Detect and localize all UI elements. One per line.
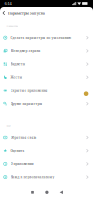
staticText: Скрытые приложения bbox=[11, 88, 48, 93]
button[interactable]: Сделать параметры по умолчанию bbox=[0, 31, 93, 44]
staticText: Виджеты bbox=[11, 62, 26, 66]
staticText: Менеджер экрана bbox=[11, 49, 41, 53]
staticText: Параметры запуска bbox=[8, 10, 45, 16]
button[interactable]: О приложении bbox=[0, 157, 93, 170]
staticText: О приложении bbox=[11, 162, 34, 166]
button[interactable]: Обратная связь bbox=[0, 131, 93, 144]
staticText: Жесты bbox=[11, 75, 23, 79]
button[interactable]: Недавние приложения bbox=[25, 186, 40, 198]
staticText: Сделать параметры по умолчанию bbox=[11, 36, 72, 40]
staticText: Обратная связь bbox=[11, 135, 37, 140]
staticText: Ещё bbox=[6, 124, 10, 127]
button[interactable]: Назад к первоначальному bbox=[0, 170, 93, 184]
button[interactable]: Назад bbox=[54, 186, 68, 198]
button[interactable]: Домой bbox=[40, 186, 54, 198]
button[interactable]: Виджеты bbox=[0, 57, 93, 71]
button[interactable]: Назад bbox=[0, 7, 8, 18]
button[interactable]: Менеджер экрана bbox=[0, 44, 93, 57]
button[interactable]: Оценить bbox=[0, 144, 93, 157]
staticText: Назад к первоначальному bbox=[11, 175, 55, 179]
button[interactable]: Другие параметры bbox=[0, 97, 93, 110]
staticText: Оценить bbox=[11, 149, 25, 153]
staticText: Другие параметры bbox=[11, 102, 43, 106]
staticText: 6:14 bbox=[4, 1, 11, 6]
button[interactable]: Скрытые приложения bbox=[0, 84, 93, 97]
button[interactable]: Жесты bbox=[0, 71, 93, 84]
staticText: Параметры bbox=[6, 24, 18, 27]
